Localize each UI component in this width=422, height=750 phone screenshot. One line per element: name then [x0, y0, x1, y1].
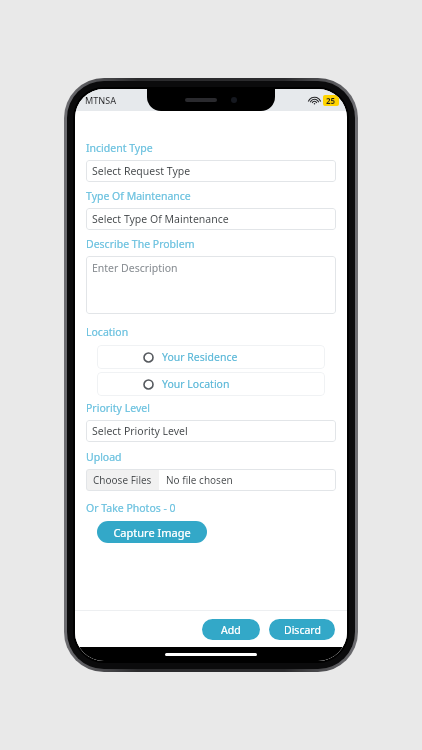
staticText: Or Take Photos - 0 [86, 501, 176, 515]
button[interactable]: Discard [269, 619, 335, 640]
staticText: Select Priority Level [92, 424, 188, 438]
staticText: Your Residence [162, 350, 238, 364]
staticText: Location [86, 325, 129, 339]
staticText: Enter Description [92, 261, 178, 275]
button[interactable]: Choose Files [86, 469, 336, 491]
staticText: Choose Files [93, 473, 152, 487]
staticText: Discard [284, 623, 321, 637]
button[interactable]: Select Request Type [86, 160, 336, 182]
staticText: Select Request Type [92, 164, 191, 178]
button[interactable]: Add [202, 619, 260, 640]
button[interactable]: Your Location [97, 372, 325, 396]
staticText: Select Type Of Maintenance [92, 212, 229, 226]
staticText: Upload [86, 450, 122, 464]
button[interactable]: Your Residence [97, 345, 325, 369]
staticText: 25 [326, 95, 336, 106]
staticText: No file chosen [166, 473, 233, 487]
button[interactable]: Select Priority Level [86, 420, 336, 442]
staticText: Incident Type [86, 141, 153, 155]
staticText: Capture Image [113, 525, 191, 540]
staticText: Priority Level [86, 401, 150, 415]
staticText: Your Location [162, 377, 230, 391]
staticText: MTNSA [85, 94, 117, 106]
button[interactable]: Select Type Of Maintenance [86, 208, 336, 230]
staticText: Add [221, 623, 241, 637]
button[interactable]: Capture Image [97, 521, 207, 543]
staticText: Describe The Problem [86, 237, 195, 251]
button[interactable]: Enter Description [86, 256, 336, 314]
staticText: Type Of Maintenance [86, 189, 191, 203]
